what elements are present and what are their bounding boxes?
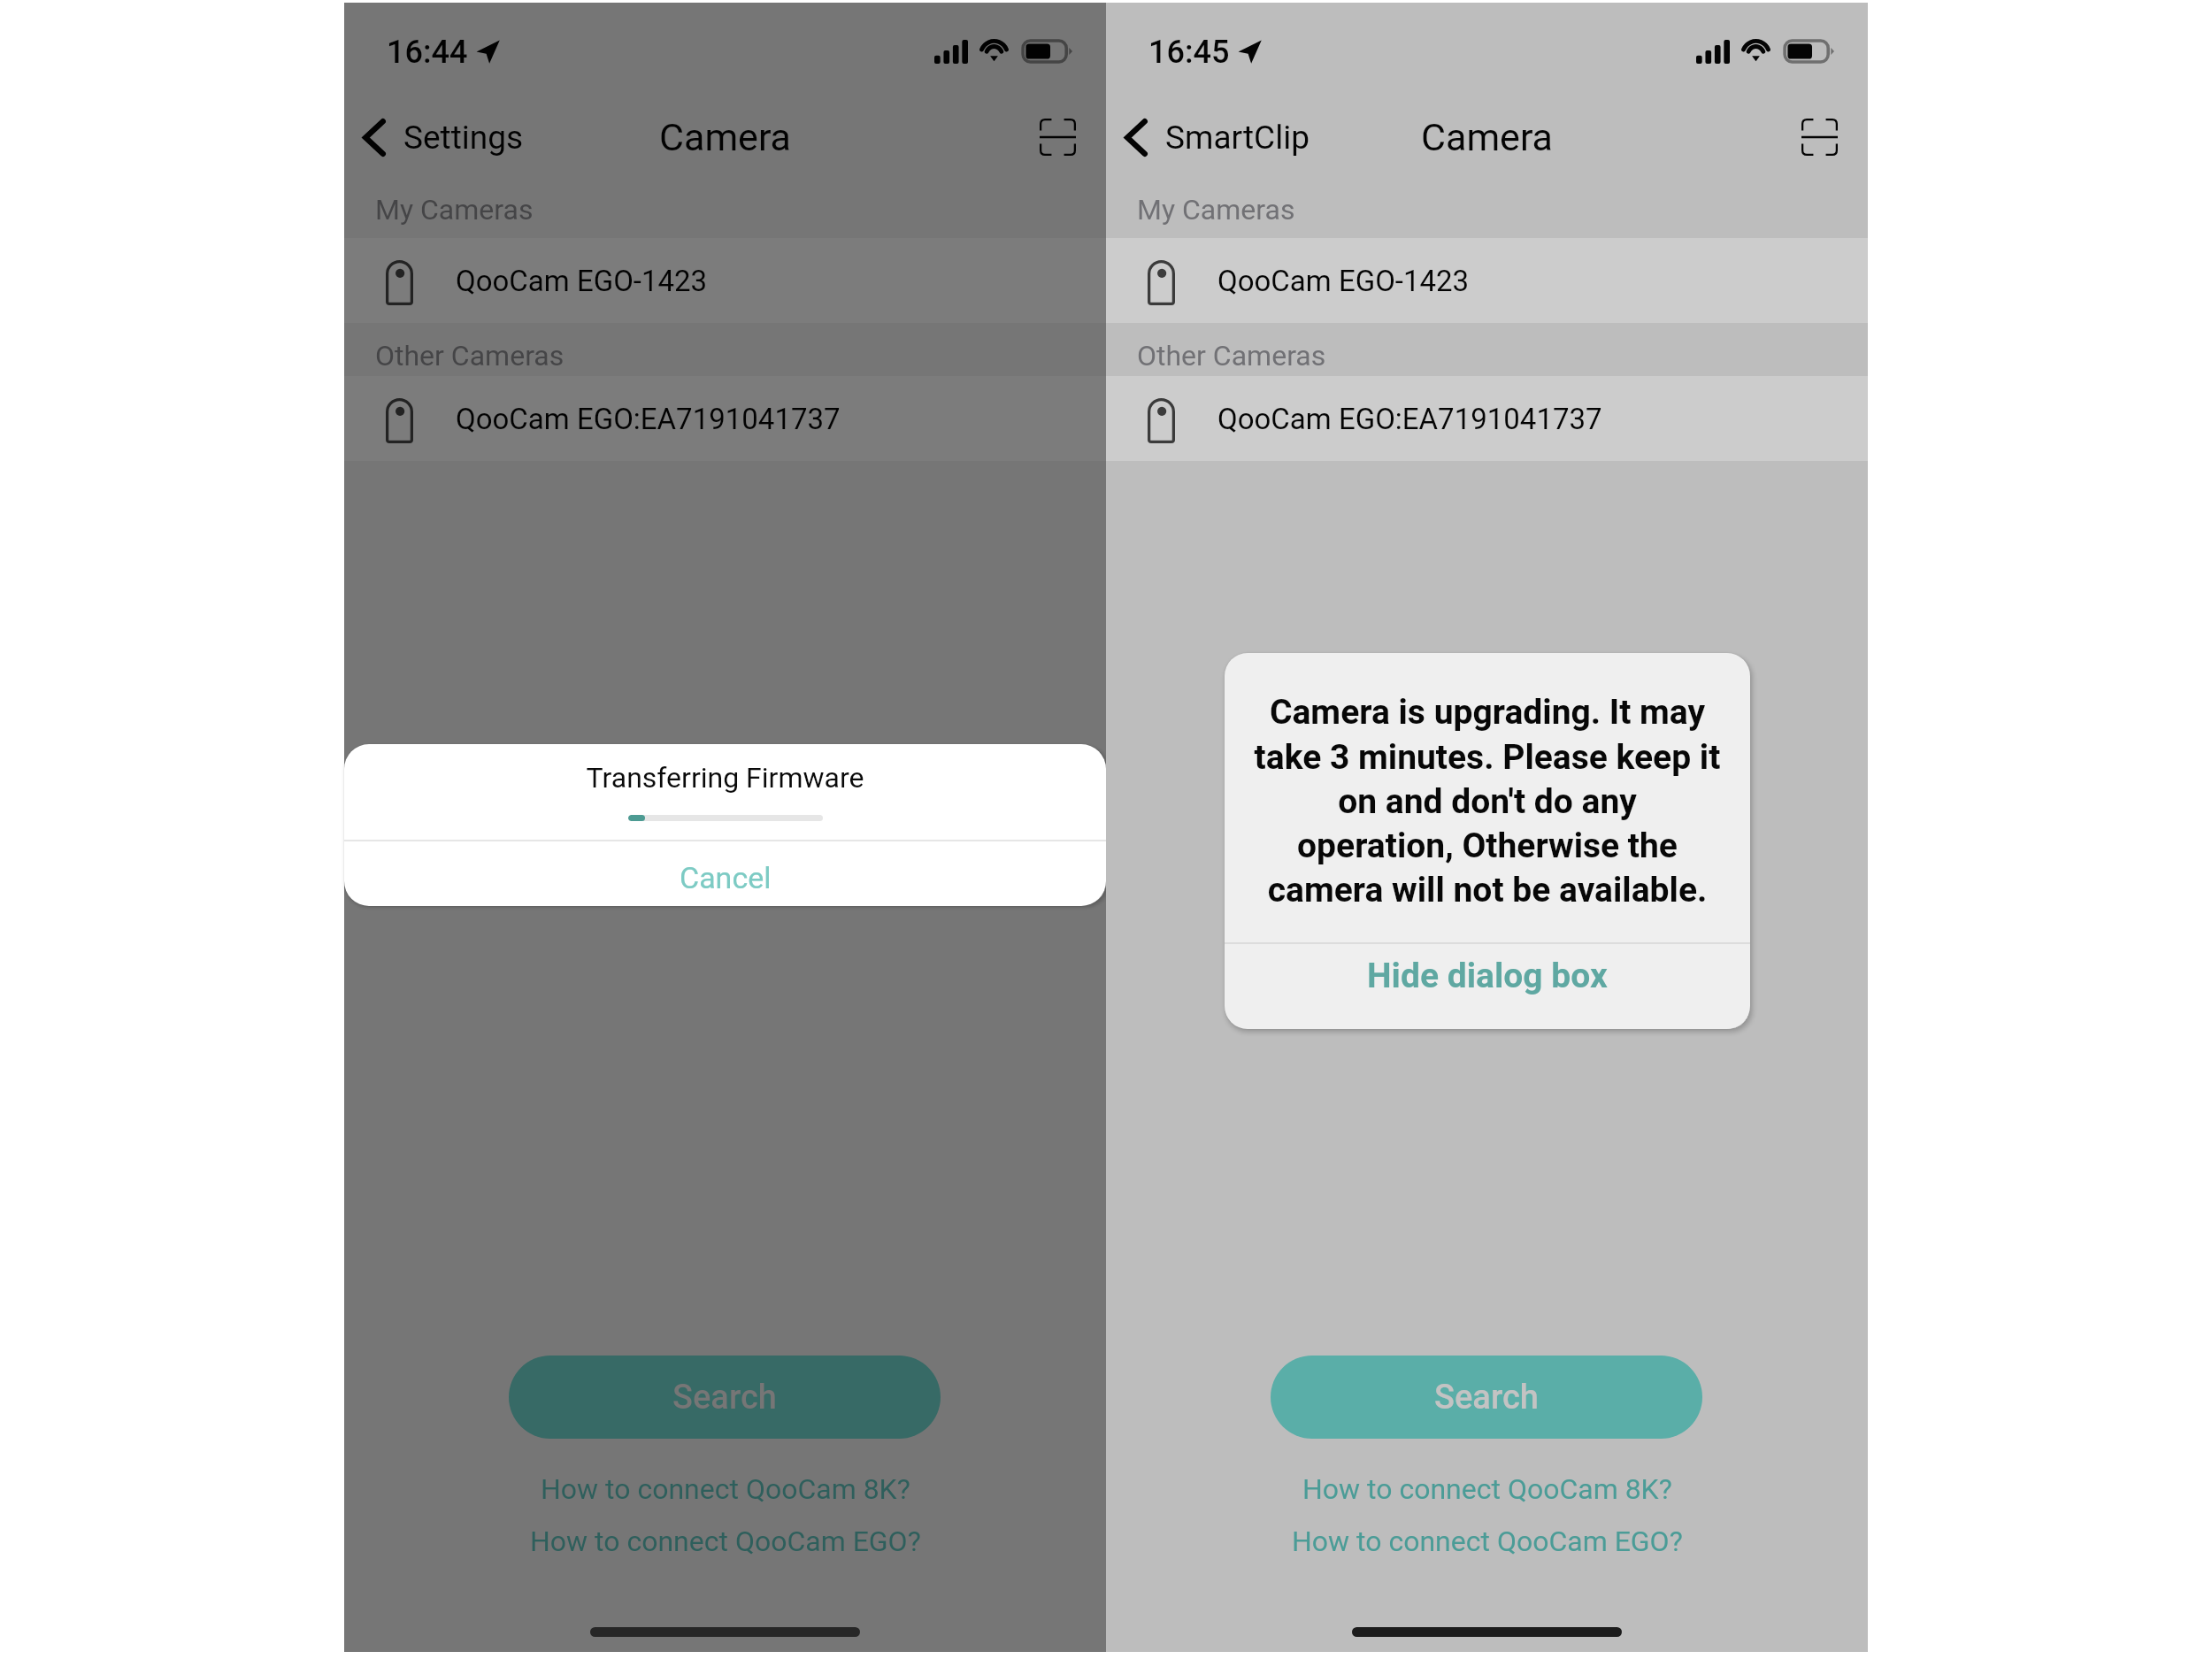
staticText: How to connect QooCam EGO? — [530, 1525, 921, 1555]
button[interactable]: Search — [509, 1356, 941, 1439]
staticText: SmartClip — [1165, 119, 1310, 157]
staticText: QooCam EGO-1423 — [1217, 264, 1470, 298]
staticText: Settings — [403, 119, 524, 157]
staticText: How to connect QooCam 8K? — [1302, 1472, 1672, 1502]
staticText: My Cameras — [375, 193, 534, 227]
staticText: My Cameras — [1137, 193, 1295, 227]
button[interactable]: How to connect QooCam 8K? — [523, 1464, 928, 1510]
button[interactable]: How to connect QooCam EGO? — [1274, 1517, 1701, 1563]
staticText: Search — [1434, 1378, 1539, 1417]
button[interactable]: SmartClip — [1106, 108, 1324, 167]
button[interactable]: QooCam EGO:EA7191041737 — [344, 376, 1106, 461]
staticText: QooCam EGO:EA7191041737 — [1217, 402, 1602, 436]
button[interactable]: Cancel — [344, 841, 1106, 906]
staticText: Transferring Firmware — [344, 761, 1106, 795]
button[interactable]: Scan QR code — [1020, 96, 1095, 178]
staticText: Camera — [1421, 115, 1554, 159]
staticText: How to connect QooCam 8K? — [541, 1472, 910, 1502]
button[interactable]: How to connect QooCam 8K? — [1285, 1464, 1690, 1510]
staticText: How to connect QooCam EGO? — [1292, 1525, 1683, 1555]
staticText: Other Cameras — [1137, 339, 1326, 373]
staticText: QooCam EGO:EA7191041737 — [456, 402, 841, 436]
staticText: QooCam EGO-1423 — [456, 264, 708, 298]
staticText: Search — [672, 1378, 777, 1417]
staticText: Camera is upgrading. It may take 3 minut… — [1225, 692, 1750, 910]
staticText: 16:44 — [387, 34, 468, 71]
button[interactable]: Scan QR code — [1782, 96, 1857, 178]
button[interactable]: Hide dialog box — [1225, 944, 1750, 1029]
staticText: Camera — [659, 115, 792, 159]
button[interactable]: QooCam EGO-1423 — [1106, 238, 1868, 323]
button[interactable]: Search — [1271, 1356, 1702, 1439]
button[interactable]: QooCam EGO-1423 — [344, 238, 1106, 323]
button[interactable]: QooCam EGO:EA7191041737 — [1106, 376, 1868, 461]
staticText: Hide dialog box — [1367, 956, 1608, 996]
button[interactable]: Settings — [344, 108, 538, 167]
staticText: 16:45 — [1148, 34, 1230, 71]
button[interactable]: How to connect QooCam EGO? — [512, 1517, 939, 1563]
staticText: Other Cameras — [375, 339, 565, 373]
staticText: Cancel — [680, 860, 772, 895]
